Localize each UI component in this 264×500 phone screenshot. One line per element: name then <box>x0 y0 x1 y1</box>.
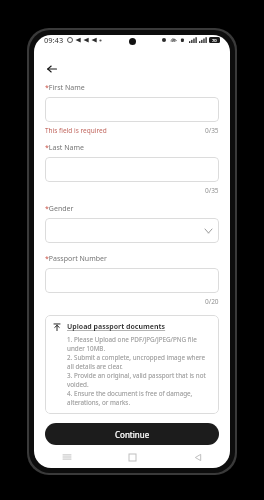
staticText: 1. Please Upload one PDF/JPG/JPEG/PNG fi… <box>67 335 211 353</box>
staticText: 0/35 <box>205 126 219 135</box>
button[interactable] <box>45 157 219 182</box>
button[interactable] <box>45 268 219 293</box>
staticText: This field is required <box>45 126 107 135</box>
staticText: 0/35 <box>205 186 219 195</box>
staticText: *Gender <box>45 204 74 214</box>
button[interactable]: Continue <box>45 423 219 445</box>
staticText: 4. Ensure the document is free of damage… <box>67 389 211 407</box>
button[interactable]: Select gender <box>45 218 219 243</box>
button[interactable]: Recent apps <box>34 450 100 464</box>
staticText: *Last Name <box>45 143 84 153</box>
staticText: Continue <box>115 429 150 440</box>
staticText: *Passport Number <box>45 254 107 264</box>
staticText: 3. Provide an original, valid passport t… <box>67 371 211 389</box>
button[interactable]: Back <box>165 450 230 464</box>
button[interactable]: Upload passport documents <box>45 315 219 414</box>
staticText: 2. Submit a complete, uncropped image wh… <box>67 353 211 371</box>
button[interactable]: Back <box>44 61 60 77</box>
button[interactable] <box>45 97 219 122</box>
staticText: Upload passport documents <box>67 322 166 332</box>
staticText: *First Name <box>45 83 85 93</box>
button[interactable]: Home <box>100 450 165 464</box>
staticText: 09:43 <box>44 35 64 45</box>
staticText: 0/20 <box>205 297 219 306</box>
staticText: 70 <box>212 38 217 43</box>
